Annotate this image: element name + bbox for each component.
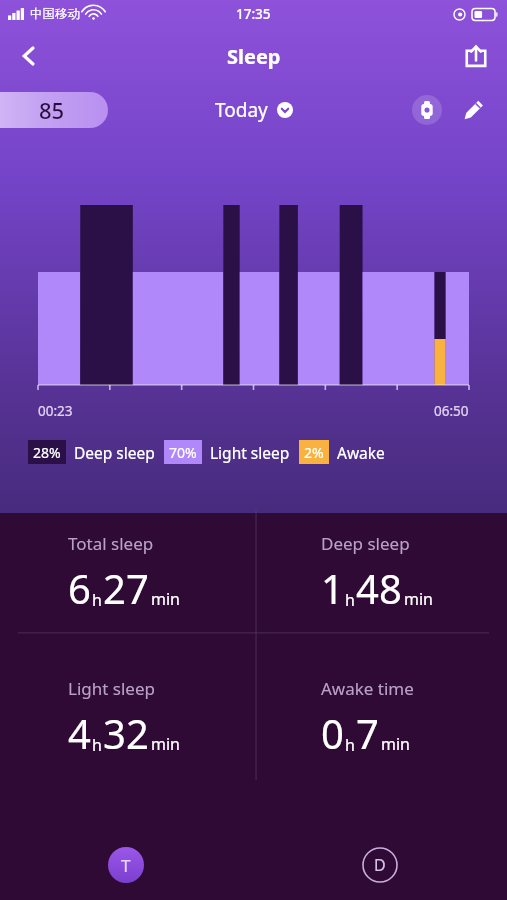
staticText: 中国移动 [30, 6, 80, 22]
staticText: 32 [103, 706, 149, 760]
staticText: 17:35 [236, 5, 271, 23]
staticText: 27 [103, 561, 149, 615]
staticText: min [381, 733, 410, 755]
staticText: h [92, 589, 102, 611]
staticText: Light sleep [210, 442, 290, 463]
staticText: Awake [337, 442, 385, 463]
button[interactable]: 85 [0, 92, 108, 128]
staticText: min [151, 733, 180, 755]
staticText: Light sleep [68, 677, 155, 700]
staticText: 28% [33, 443, 61, 462]
staticText: D [374, 854, 386, 876]
button[interactable]: Device [407, 90, 447, 130]
staticText: min [151, 588, 180, 610]
staticText: 48 [356, 561, 402, 615]
staticText: Awake time [321, 677, 414, 700]
staticText: 06:50 [434, 402, 469, 420]
button[interactable]: Tips [108, 847, 144, 883]
button[interactable]: Today [207, 94, 301, 126]
staticText: h [345, 734, 355, 756]
staticText: min [404, 588, 433, 610]
button[interactable]: Back [6, 33, 52, 79]
button[interactable]: Light sleep [0, 643, 253, 788]
button[interactable]: Total sleep [0, 498, 253, 643]
staticText: 7 [356, 706, 379, 760]
staticText: h [92, 734, 102, 756]
button[interactable]: Awake time [253, 643, 507, 788]
staticText: T [121, 854, 131, 877]
staticText: 85 [39, 95, 65, 125]
staticText: 4 [68, 706, 91, 760]
staticText: 1 [321, 561, 344, 615]
staticText: Deep sleep [74, 442, 155, 463]
staticText: 70% [169, 443, 197, 462]
button[interactable]: Edit [453, 90, 493, 130]
button[interactable]: Share [453, 33, 499, 79]
staticText: Deep sleep [321, 532, 410, 555]
staticText: Sleep [227, 43, 281, 70]
staticText: Total sleep [68, 532, 154, 555]
staticText: 2% [304, 443, 324, 462]
staticText: Today [215, 97, 268, 123]
staticText: 0 [321, 706, 344, 760]
button[interactable]: Deep sleep [253, 498, 507, 643]
staticText: 6 [68, 561, 91, 615]
staticText: 00:23 [38, 402, 73, 420]
staticText: h [345, 589, 355, 611]
button[interactable]: Details [362, 847, 398, 883]
